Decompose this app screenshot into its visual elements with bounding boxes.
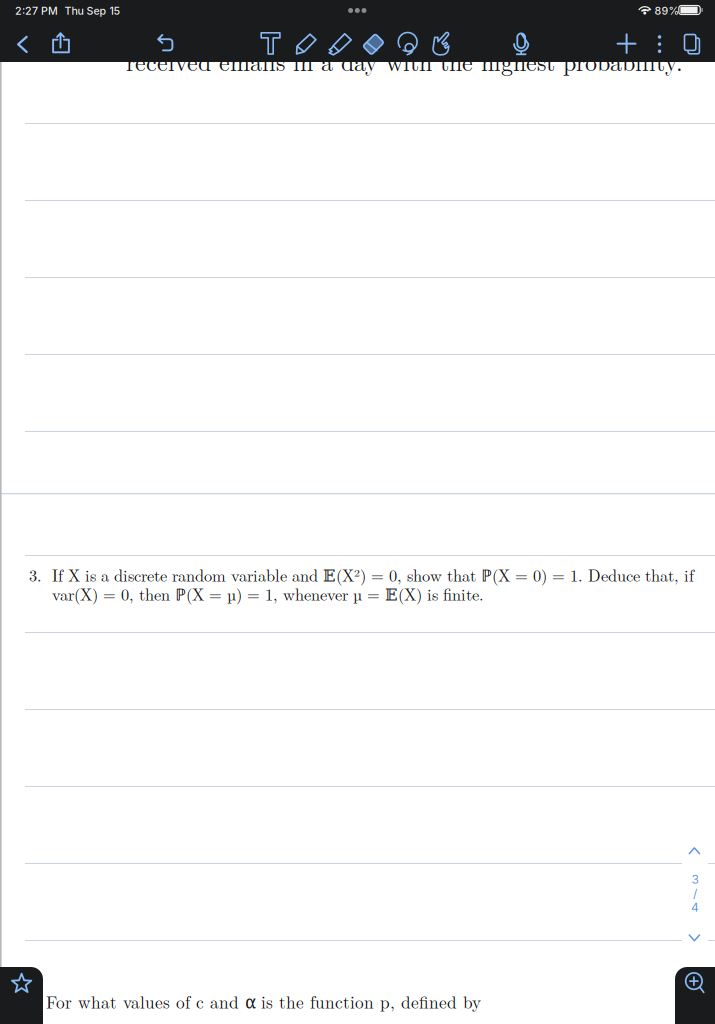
staticText: received emails in a day with the highes… <box>126 44 683 78</box>
button[interactable]: Pages <box>0 0 34 36</box>
staticText: For what values of c and α is the functi… <box>46 989 481 1014</box>
button[interactable]: Text tool <box>0 0 34 36</box>
button[interactable]: Pen <box>0 0 34 36</box>
button[interactable]: More <box>0 0 26 36</box>
button[interactable]: Bookmark <box>0 0 67 80</box>
staticText: 3 <box>691 872 698 886</box>
button[interactable]: Add <box>0 0 34 36</box>
staticText: Thu Sep 15 <box>64 4 120 17</box>
staticText: 4 <box>691 900 699 914</box>
staticText: 3. If X is a discrete random variable an… <box>29 563 694 586</box>
button[interactable]: Scroll tool <box>0 0 34 36</box>
button[interactable]: Eraser <box>0 0 34 36</box>
button[interactable]: Share <box>0 0 34 36</box>
button[interactable]: Undo <box>0 0 34 36</box>
staticText: var(X) = 0, then ℙ(X = µ) = 1, whenever … <box>52 582 484 605</box>
button[interactable]: Page 3 of 4 <box>0 0 26 108</box>
button[interactable]: Zoom in <box>0 0 64 80</box>
staticText: 2:27 PM <box>15 4 58 17</box>
staticText: 89% <box>654 4 679 17</box>
button[interactable]: Back <box>0 0 34 36</box>
button[interactable]: Record audio <box>0 0 34 36</box>
button[interactable]: Lasso <box>0 0 34 36</box>
button[interactable]: Highlighter <box>0 0 34 36</box>
staticText: / <box>693 886 697 900</box>
